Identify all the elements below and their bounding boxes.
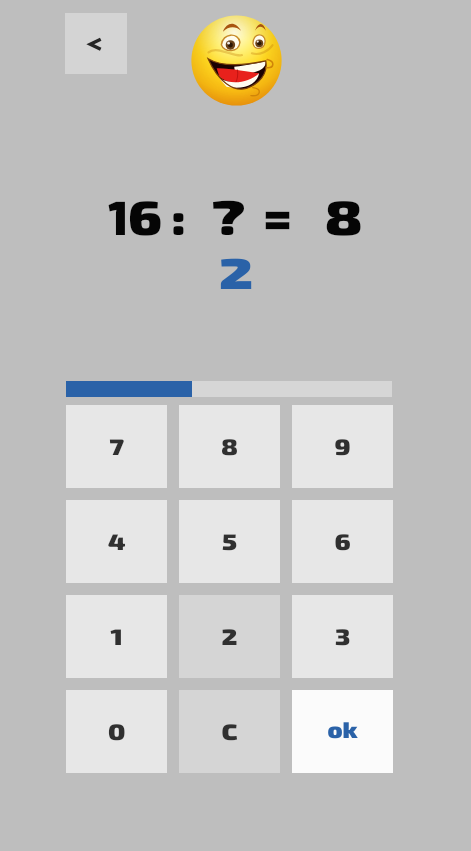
button[interactable] xyxy=(66,595,167,678)
button[interactable] xyxy=(292,405,393,488)
button[interactable] xyxy=(66,690,167,773)
button[interactable] xyxy=(292,690,393,773)
button[interactable] xyxy=(179,500,280,583)
button[interactable] xyxy=(292,500,393,583)
button[interactable] xyxy=(179,405,280,488)
button[interactable] xyxy=(66,405,167,488)
button[interactable] xyxy=(179,690,280,773)
button[interactable]: Back xyxy=(65,13,127,74)
button[interactable] xyxy=(292,595,393,678)
button[interactable] xyxy=(66,500,167,583)
button[interactable] xyxy=(179,595,280,678)
